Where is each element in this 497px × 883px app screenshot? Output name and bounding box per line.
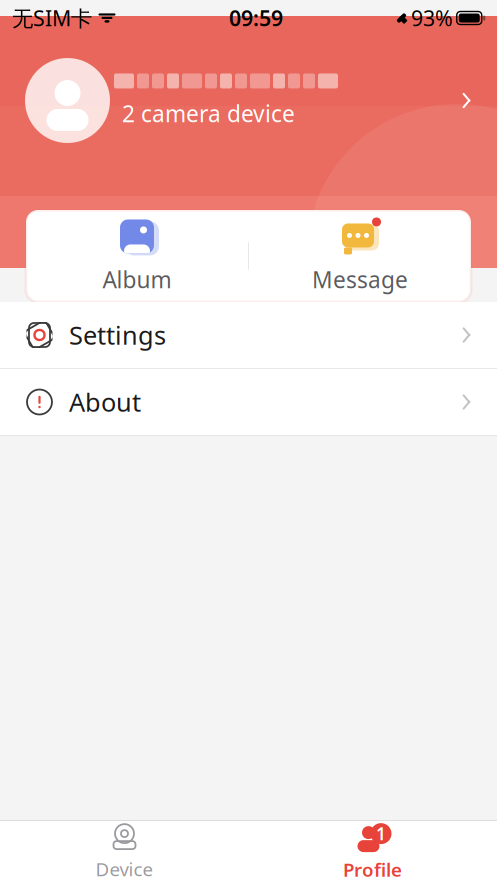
staticText: About bbox=[69, 385, 141, 419]
button[interactable]: Settings bbox=[0, 302, 497, 368]
button[interactable]: Message bbox=[249, 210, 471, 302]
staticText: 09:59 bbox=[229, 4, 283, 32]
button[interactable]: Device bbox=[0, 821, 248, 883]
staticText: 1 bbox=[376, 822, 386, 845]
button[interactable]: Account details bbox=[0, 58, 497, 143]
button[interactable]: Album bbox=[26, 210, 248, 302]
staticText: 无SIM卡 bbox=[12, 4, 92, 32]
staticText: 93% bbox=[411, 4, 453, 32]
button[interactable]: About bbox=[0, 369, 497, 435]
staticText: Message bbox=[312, 264, 408, 294]
staticText: Album bbox=[102, 264, 171, 294]
button[interactable]: 1 bbox=[248, 821, 496, 883]
staticText: 2 camera device bbox=[122, 98, 295, 128]
staticText: Device bbox=[95, 857, 153, 881]
staticText: Profile bbox=[343, 857, 402, 882]
staticText: Settings bbox=[69, 318, 166, 352]
